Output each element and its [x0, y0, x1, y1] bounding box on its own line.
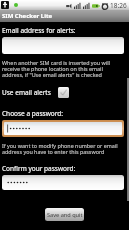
- button[interactable]: Choose a password: [2, 120, 124, 137]
- staticText: Use email alerts: [2, 88, 51, 97]
- button[interactable]: Save and quit: [45, 208, 84, 221]
- button[interactable]: Email address: [2, 37, 124, 54]
- staticText: If you want to modify phone number or em…: [2, 142, 122, 156]
- staticText: Save and quit: [47, 211, 83, 219]
- staticText: 18:26: [110, 1, 127, 10]
- staticText: Email address for alerts:: [2, 26, 76, 35]
- button[interactable]: Use email alerts: [2, 87, 124, 98]
- staticText: SIM Checker Lite: [2, 12, 53, 20]
- staticText: Confirm your password:: [2, 164, 76, 173]
- staticText: When another SIM card is inserted you wi…: [2, 59, 122, 79]
- staticText: Choose a password:: [2, 109, 64, 118]
- button[interactable]: Confirm your password: [2, 175, 124, 190]
